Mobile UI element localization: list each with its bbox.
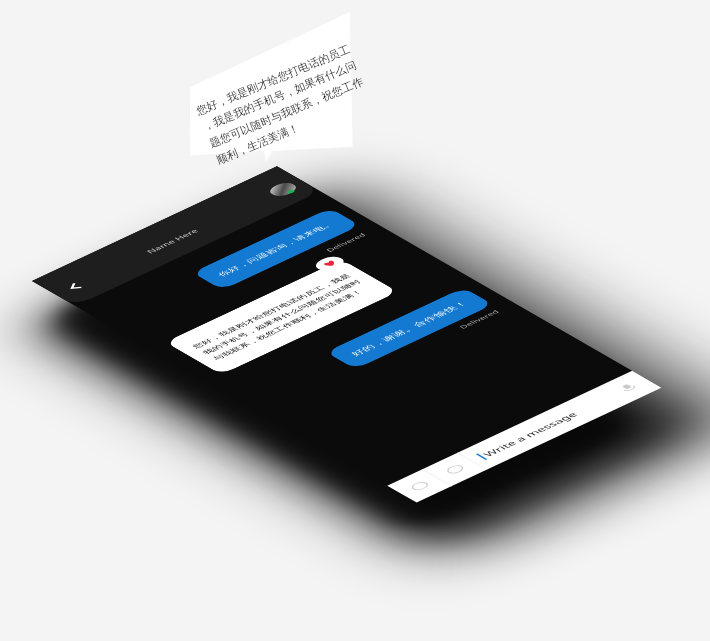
staticText: 好的，谢谢。合作愉快！ <box>349 299 471 358</box>
staticText: 您好，我是刚才给您打电话的员工，我是 我的手机号，如果有什么问题您可以随时 与我… <box>190 273 373 361</box>
button[interactable]: Back <box>53 276 94 297</box>
button[interactable]: 您好，我是刚才给您打电话的员工，我是 我的手机号，如果有什么问题您可以随时 与我… <box>165 259 398 375</box>
button[interactable]: 好的，谢谢。合作愉快！ <box>325 287 493 369</box>
staticText: Delivered <box>457 308 501 330</box>
staticText: Name Here <box>144 227 201 255</box>
button[interactable]: Contact profile <box>265 180 301 199</box>
button[interactable]: Voice message <box>596 371 661 405</box>
staticText: 你好，问题咨询，请来电。 <box>216 220 337 278</box>
staticText: 您好，我是刚才给您打电话的员工 ，我是我的手机号，如果有什么问 题您可以随时与我… <box>194 42 372 167</box>
staticText: Delivered <box>324 231 368 253</box>
button[interactable]: History <box>387 469 451 503</box>
button[interactable]: Emoji <box>423 453 486 486</box>
button[interactable]: Write a message <box>466 388 625 466</box>
staticText: Write a message <box>480 410 581 458</box>
button[interactable]: 你好，问题咨询，请来电。 <box>192 208 360 290</box>
